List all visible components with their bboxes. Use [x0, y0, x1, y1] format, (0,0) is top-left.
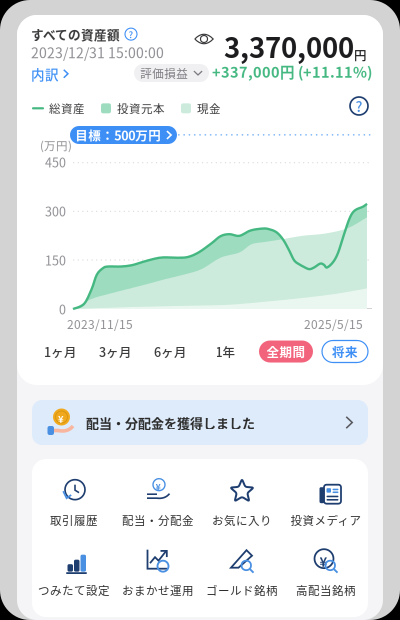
- button[interactable]: 将来: [322, 340, 368, 362]
- button[interactable]: お気に入り: [200, 473, 284, 533]
- staticText: 取引履歴: [50, 512, 98, 528]
- staticText: 300: [45, 202, 66, 220]
- staticText: 0: [59, 300, 66, 318]
- staticText: 3,370,000: [224, 26, 354, 66]
- staticText: 1年: [215, 342, 235, 361]
- staticText: (万円): [40, 137, 72, 154]
- staticText: ?: [128, 27, 133, 41]
- button[interactable]: 3ヶ月: [88, 340, 143, 363]
- button[interactable]: ¥: [32, 400, 368, 445]
- button[interactable]: 金額を隠す: [194, 32, 214, 46]
- button[interactable]: すべての資産額: [31, 25, 137, 43]
- button[interactable]: 投資メディア: [284, 473, 368, 533]
- button[interactable]: 1年: [198, 340, 253, 363]
- staticText: 150: [45, 251, 66, 269]
- staticText: つみたて設定: [38, 582, 110, 598]
- staticText: 全期間: [266, 342, 305, 361]
- staticText: 2025/5/15: [304, 315, 363, 332]
- button[interactable]: 6ヶ月: [143, 340, 198, 363]
- staticText: 1ヶ月: [44, 342, 77, 361]
- staticText: ¥: [58, 412, 64, 425]
- staticText: 2023/11/15: [67, 315, 133, 332]
- staticText: 高配当銘柄: [296, 582, 356, 598]
- staticText: すべての資産額: [31, 25, 120, 43]
- button[interactable]: ¥: [284, 543, 368, 603]
- button[interactable]: 1ヶ月: [33, 340, 88, 363]
- staticText: ?: [355, 96, 362, 116]
- staticText: 目標：500万円: [75, 126, 161, 144]
- staticText: 投資メディア: [290, 512, 361, 528]
- staticText: 450: [45, 153, 66, 171]
- button[interactable]: おまかせ運用: [116, 543, 200, 603]
- button[interactable]: 目標：500万円: [70, 126, 177, 144]
- staticText: 総資産: [49, 100, 85, 117]
- staticText: +337,000円 (+11.11%): [212, 61, 372, 82]
- staticText: 内訳: [31, 64, 59, 83]
- staticText: おまかせ運用: [122, 582, 194, 598]
- staticText: 配当・分配金: [122, 512, 194, 528]
- button[interactable]: 全期間: [259, 340, 313, 362]
- staticText: 6ヶ月: [154, 342, 187, 361]
- staticText: ¥: [155, 480, 160, 493]
- staticText: 現金: [197, 100, 221, 117]
- staticText: ¥: [319, 552, 327, 570]
- staticText: 投資元本: [117, 100, 165, 117]
- button[interactable]: ヘルプ: [350, 97, 368, 115]
- staticText: 2023/12/31 15:00:00: [31, 42, 164, 62]
- staticText: 評価損益: [140, 65, 188, 81]
- button[interactable]: ¥: [116, 473, 200, 533]
- staticText: 将来: [332, 342, 358, 361]
- button[interactable]: 評価損益: [134, 64, 209, 82]
- button[interactable]: 取引履歴: [32, 473, 116, 533]
- button[interactable]: つみたて設定: [32, 543, 116, 603]
- button[interactable]: ゴールド銘柄: [200, 543, 284, 603]
- button[interactable]: 内訳: [31, 64, 69, 83]
- staticText: 配当・分配金を獲得しました: [86, 413, 255, 432]
- staticText: ゴールド銘柄: [206, 582, 278, 598]
- staticText: お気に入り: [212, 512, 272, 528]
- staticText: 円: [354, 46, 367, 64]
- staticText: 3ヶ月: [99, 342, 132, 361]
